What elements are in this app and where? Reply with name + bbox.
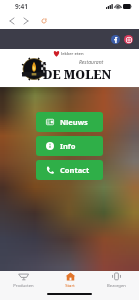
button[interactable]: Nieuws	[36, 112, 103, 132]
staticText: Restaurant	[79, 59, 104, 66]
staticText: lekker eten	[61, 51, 84, 57]
staticText: Nieuws	[60, 117, 88, 127]
button[interactable]: Info	[36, 136, 103, 156]
button[interactable]: Producten	[0, 271, 47, 289]
button[interactable]: Reload	[37, 14, 51, 28]
staticText: Info	[60, 141, 76, 151]
staticText: 9:41	[15, 2, 28, 11]
button[interactable]: Forward	[19, 14, 33, 28]
button[interactable]: Back	[5, 14, 19, 28]
staticText: Start	[65, 283, 75, 289]
button[interactable]: Contact	[36, 160, 103, 180]
staticText: Bezorgen	[107, 283, 126, 289]
button[interactable]: Facebook	[111, 35, 120, 44]
button[interactable]: Instagram	[124, 35, 133, 44]
staticText: Producten	[13, 283, 34, 289]
staticText: Contact	[60, 165, 90, 175]
button[interactable]: Start	[47, 271, 93, 289]
staticText: DE MOLEN	[43, 66, 112, 82]
button[interactable]: Bezorgen	[93, 271, 139, 289]
